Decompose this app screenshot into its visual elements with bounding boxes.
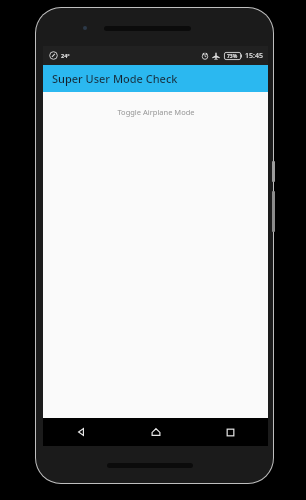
button[interactable]: Super User Mode Check bbox=[43, 65, 268, 92]
button[interactable]: Back bbox=[43, 418, 118, 446]
button[interactable]: Recent apps bbox=[193, 418, 268, 446]
button[interactable]: Home bbox=[118, 418, 193, 446]
staticText: 15:45 bbox=[245, 51, 263, 61]
staticText: 73% bbox=[227, 53, 238, 60]
button[interactable]: Toggle Airplane Mode bbox=[107, 103, 205, 121]
staticText: Toggle Airplane Mode bbox=[117, 107, 195, 117]
staticText: Super User Mode Check bbox=[52, 71, 178, 86]
staticText: 24° bbox=[61, 52, 70, 59]
